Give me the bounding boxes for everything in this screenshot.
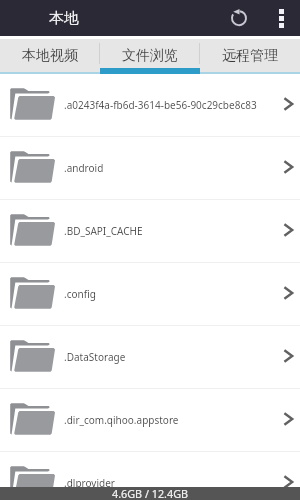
button[interactable]: .android — [0, 137, 300, 199]
staticText: .dlprovider — [64, 476, 283, 490]
staticText: .dir_com.qihoo.appstore — [64, 413, 283, 427]
staticText: .BD_SAPI_CACHE — [64, 224, 283, 238]
staticText: .DataStorage — [64, 350, 283, 364]
button[interactable]: .dlprovider — [0, 452, 300, 500]
button[interactable]: 文件浏览 — [100, 39, 200, 68]
button[interactable]: Refresh — [216, 0, 262, 36]
staticText: .android — [64, 161, 283, 175]
button[interactable]: .BD_SAPI_CACHE — [0, 200, 300, 262]
button[interactable]: More options — [262, 0, 300, 36]
staticText: 4.6GB / 12.4GB — [112, 486, 189, 499]
button[interactable]: .a0243f4a-fb6d-3614-be56-90c29cbe8c83 — [0, 74, 300, 136]
button[interactable]: .DataStorage — [0, 326, 300, 388]
staticText: .config — [64, 287, 283, 301]
staticText: 本地 — [49, 9, 79, 28]
staticText: 远程管理 — [222, 47, 278, 65]
button[interactable]: 本地视频 — [0, 39, 100, 68]
staticText: 文件浏览 — [122, 47, 178, 65]
button[interactable]: 远程管理 — [200, 39, 300, 68]
staticText: 本地视频 — [22, 47, 78, 65]
button[interactable]: .dir_com.qihoo.appstore — [0, 389, 300, 451]
button[interactable]: .config — [0, 263, 300, 325]
staticText: .a0243f4a-fb6d-3614-be56-90c29cbe8c83 — [64, 98, 283, 112]
